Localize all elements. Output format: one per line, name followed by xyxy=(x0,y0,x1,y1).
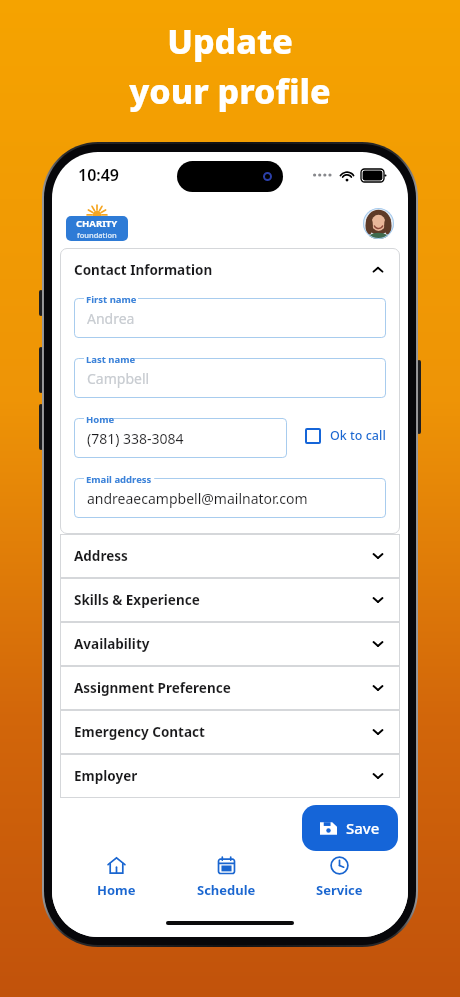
button[interactable]: Address xyxy=(60,534,400,578)
other: Expand xyxy=(370,548,386,564)
staticText: 10:49 xyxy=(78,164,120,186)
staticText: andreaecampbell@mailnator.com xyxy=(87,489,308,508)
button[interactable]: Employer xyxy=(60,754,400,798)
staticText: First name xyxy=(86,293,137,306)
other: Expand xyxy=(370,636,386,652)
staticText: Schedule xyxy=(197,881,256,899)
staticText: Emergency Contact xyxy=(74,723,370,741)
button[interactable]: Skills & Experience xyxy=(60,578,400,622)
staticText: Employer xyxy=(74,767,370,785)
staticText: Email address xyxy=(86,473,152,486)
other: Expand xyxy=(370,724,386,740)
button[interactable]: Assignment Preference xyxy=(60,666,400,710)
staticText: Service xyxy=(316,881,363,899)
staticText: Last name xyxy=(86,353,136,366)
staticText: Home xyxy=(97,881,136,899)
staticText: foundation xyxy=(77,230,117,240)
button[interactable]: Home xyxy=(81,851,152,903)
button[interactable]: Home xyxy=(74,412,287,458)
button[interactable]: Availability xyxy=(60,622,400,666)
button[interactable]: Save xyxy=(302,805,398,851)
button[interactable]: Last name xyxy=(74,352,386,398)
button[interactable]: First name xyxy=(74,292,386,338)
staticText: Contact Information xyxy=(74,261,370,279)
staticText: Ok to call xyxy=(330,427,386,444)
staticText: Home xyxy=(86,413,115,426)
button[interactable]: Ok to call xyxy=(305,421,386,450)
staticText: Availability xyxy=(74,635,370,653)
staticText: Campbell xyxy=(87,369,150,388)
button[interactable]: Emergency Contact xyxy=(60,710,400,754)
staticText: Address xyxy=(74,547,370,565)
other: Expand xyxy=(370,768,386,784)
button[interactable]: CHARITY xyxy=(66,205,128,241)
other: Expand xyxy=(370,680,386,696)
other: Expand xyxy=(370,592,386,608)
staticText: your profile xyxy=(129,68,331,114)
staticText: Save xyxy=(346,818,380,838)
staticText: Andrea xyxy=(87,309,135,328)
button[interactable]: Service xyxy=(300,851,379,903)
staticText: Update xyxy=(167,18,293,64)
other: Collapse xyxy=(370,262,386,278)
staticText: (781) 338-3084 xyxy=(87,429,184,448)
staticText: Skills & Experience xyxy=(74,591,370,609)
button[interactable]: Contact Information xyxy=(60,248,400,292)
button[interactable]: Email address xyxy=(74,472,386,518)
button[interactable]: Schedule xyxy=(181,851,272,903)
staticText: CHARITY xyxy=(76,217,118,230)
button[interactable]: Profile xyxy=(363,208,394,239)
staticText: Assignment Preference xyxy=(74,679,370,697)
